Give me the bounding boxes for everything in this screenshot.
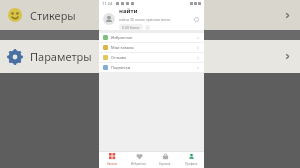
staticText: Отзывы <box>111 55 127 60</box>
staticText: Мои заказы <box>111 45 134 50</box>
button[interactable]: Избранное <box>126 151 152 168</box>
button[interactable]: Стикеры <box>0 0 300 30</box>
button[interactable]: Параметры <box>0 40 300 73</box>
button[interactable]: Корзина <box>152 151 178 168</box>
staticText: найти 30 очень нужного всего <box>119 17 171 22</box>
button[interactable]: 0.00 бонус <box>119 24 143 30</box>
button[interactable]: найти <box>99 7 204 30</box>
staticText: Подписки <box>111 65 131 70</box>
button[interactable]: Уведомления <box>192 15 200 23</box>
staticText: Параметры <box>30 49 92 64</box>
button[interactable]: Отзывы <box>99 53 204 62</box>
button[interactable]: Мои заказы <box>99 43 204 52</box>
staticText: Избранное <box>111 35 133 40</box>
staticText: Каталог <box>107 162 118 166</box>
button[interactable]: Профиль <box>178 151 204 168</box>
button[interactable]: Каталог <box>99 151 126 168</box>
staticText: Стикеры <box>30 8 76 23</box>
staticText: 11:24 <box>102 1 113 6</box>
button[interactable]: Подписки <box>99 63 204 72</box>
staticText: Корзина <box>159 162 171 166</box>
staticText: найти <box>119 7 138 15</box>
staticText: Избранное <box>131 162 147 166</box>
staticText: Профиль <box>185 162 198 166</box>
staticText: 0.00 бонус <box>122 25 140 29</box>
button[interactable]: Избранное <box>99 33 204 42</box>
